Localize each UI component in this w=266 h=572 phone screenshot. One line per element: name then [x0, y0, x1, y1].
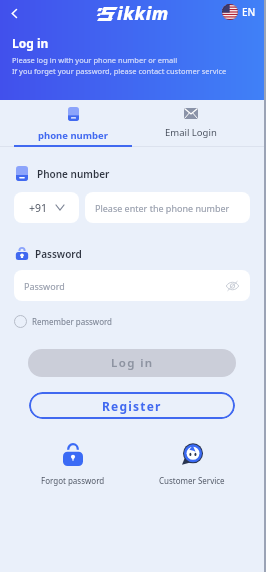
button[interactable]: Customer Service	[159, 443, 225, 486]
button[interactable]: Log in	[28, 349, 236, 377]
staticText: Password	[24, 280, 65, 292]
button[interactable]: Register	[29, 392, 235, 419]
staticText: phone number	[38, 129, 108, 142]
staticText: Customer Service	[159, 475, 225, 486]
staticText: Log in	[12, 35, 49, 51]
staticText: Email Login	[165, 126, 217, 139]
button[interactable]: Email Login	[132, 100, 250, 150]
staticText: Register	[102, 398, 162, 414]
button[interactable]: Please enter the phone number	[85, 192, 250, 223]
staticText: Phone number	[37, 167, 110, 181]
staticText: EN	[242, 5, 256, 19]
staticText: +91	[29, 201, 48, 215]
button[interactable]: Show password	[224, 278, 240, 294]
button[interactable]: Language EN	[222, 4, 256, 20]
staticText: If you forget your password, please cont…	[12, 66, 227, 76]
staticText: Password	[35, 247, 82, 261]
button[interactable]: Remember password	[14, 315, 113, 328]
button[interactable]: phone number	[14, 100, 132, 150]
button[interactable]: Back	[2, 1, 26, 25]
staticText: Please enter the phone number	[95, 202, 230, 214]
staticText: Please log in with your phone number or …	[12, 55, 178, 65]
staticText: Forgot password	[41, 475, 105, 486]
staticText: ikkim	[117, 1, 169, 26]
button[interactable]: Forgot password	[41, 443, 105, 486]
button[interactable]: Password	[14, 270, 250, 301]
staticText: Remember password	[32, 316, 113, 327]
button[interactable]: +91	[14, 192, 79, 223]
staticText: Log in	[111, 355, 154, 371]
